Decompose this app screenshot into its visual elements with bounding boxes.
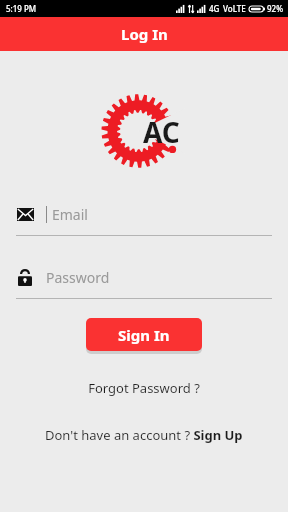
staticText: 4G xyxy=(209,3,220,14)
button[interactable]: Sign In xyxy=(86,318,202,351)
staticText: Email xyxy=(52,205,88,224)
button[interactable]: Forgot Password ? xyxy=(0,374,288,402)
staticText: 5:19 PM xyxy=(6,3,37,14)
staticText: Password xyxy=(46,268,110,287)
staticText: Log In xyxy=(121,24,168,44)
button[interactable]: Email xyxy=(0,201,288,236)
staticText: Sign In xyxy=(118,325,170,345)
staticText: AC xyxy=(143,113,180,151)
other: Password xyxy=(16,268,34,286)
button[interactable]: Don't have an account ? Sign Up xyxy=(39,422,249,448)
other: Email xyxy=(16,205,34,223)
staticText: 92% xyxy=(267,3,283,14)
button[interactable]: Password xyxy=(0,264,288,299)
staticText: VoLTE xyxy=(223,3,246,14)
